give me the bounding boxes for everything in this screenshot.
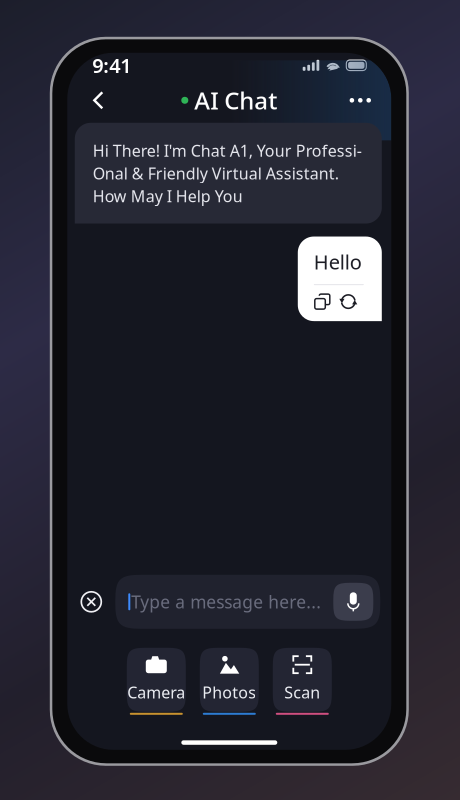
button[interactable]: Voice input <box>333 583 373 621</box>
staticText: Type a message here... <box>131 590 321 613</box>
staticText: Photos <box>202 682 256 703</box>
button[interactable]: Scan <box>273 648 332 715</box>
staticText: AI Chat <box>194 84 277 116</box>
staticText: 9:41 <box>92 52 131 79</box>
button[interactable]: Photos <box>200 648 259 715</box>
button[interactable]: Back <box>80 82 116 118</box>
button[interactable]: Copy <box>314 293 331 310</box>
staticText: Hello <box>314 248 362 275</box>
staticText: Camera <box>127 682 185 703</box>
button[interactable]: Camera <box>127 648 186 715</box>
button[interactable]: Regenerate <box>340 293 357 310</box>
staticText: Scan <box>284 682 320 703</box>
staticText: Hi There! I'm Chat A1, Your Professi- On… <box>93 140 362 206</box>
button[interactable]: Close <box>77 588 105 616</box>
button[interactable]: More options <box>342 82 378 118</box>
